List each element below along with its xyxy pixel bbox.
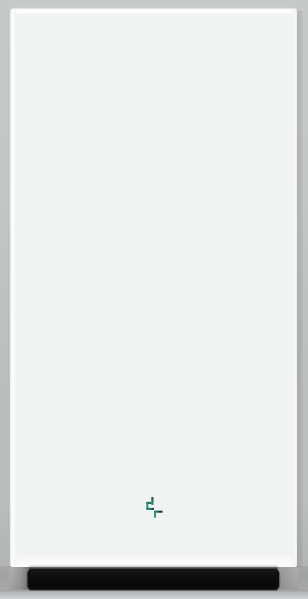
button[interactable]: Product photo of a white PC case	[0, 0, 308, 599]
